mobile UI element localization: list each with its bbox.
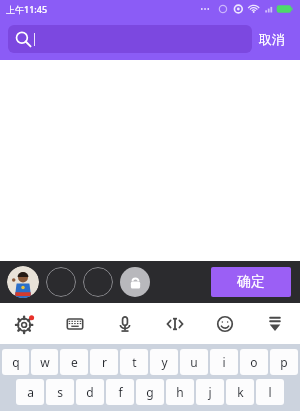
staticText: 取消 <box>259 31 285 47</box>
staticText: i <box>222 354 226 370</box>
button[interactable]: a <box>16 379 44 405</box>
staticText: o <box>250 354 258 370</box>
button[interactable]: o <box>240 349 268 375</box>
button[interactable]: Keyboard <box>50 303 100 344</box>
button[interactable]: s <box>46 379 74 405</box>
staticText: k <box>237 384 244 400</box>
staticText: g <box>146 384 154 400</box>
staticText: s <box>57 384 63 400</box>
button[interactable]: d <box>76 379 104 405</box>
button[interactable]: j <box>196 379 224 405</box>
staticText: a <box>27 384 34 400</box>
button[interactable]: Emoji <box>200 303 250 344</box>
button[interactable]: Locked <box>120 267 150 297</box>
button[interactable]: e <box>60 349 88 375</box>
button[interactable]: t <box>120 349 148 375</box>
staticText: 上午11:45 <box>6 3 48 15</box>
button[interactable]: i <box>210 349 238 375</box>
button[interactable]: y <box>150 349 178 375</box>
other: Search <box>14 30 32 48</box>
staticText: 确定 <box>237 273 265 291</box>
button[interactable]: q <box>2 349 29 375</box>
staticText: l <box>268 384 272 400</box>
button[interactable]: r <box>90 349 118 375</box>
button[interactable]: Empty slot <box>46 267 76 297</box>
button[interactable]: g <box>136 379 164 405</box>
button[interactable]: Hide keyboard <box>250 303 300 344</box>
button[interactable]: 取消 <box>252 27 292 51</box>
button[interactable]: Settings <box>0 303 50 344</box>
staticText: w <box>40 354 50 370</box>
staticText: u <box>190 354 198 370</box>
button[interactable]: f <box>106 379 134 405</box>
button[interactable]: Voice input <box>100 303 150 344</box>
staticText: j <box>208 384 212 400</box>
button[interactable]: Empty slot <box>83 267 113 297</box>
button[interactable]: h <box>166 379 194 405</box>
staticText: e <box>71 354 78 370</box>
button[interactable]: Search <box>8 25 252 53</box>
staticText: h <box>176 384 184 400</box>
staticText: r <box>102 354 107 370</box>
staticText: y <box>161 354 168 370</box>
button[interactable]: Avatar <box>7 266 39 298</box>
button[interactable]: k <box>226 379 254 405</box>
button[interactable]: 确定 <box>211 267 291 297</box>
button[interactable]: p <box>270 349 298 375</box>
button[interactable]: w <box>31 349 58 375</box>
staticText: f <box>118 384 123 400</box>
staticText: d <box>86 384 94 400</box>
staticText: t <box>132 354 137 370</box>
button[interactable]: l <box>256 379 284 405</box>
button[interactable]: Text tools <box>150 303 200 344</box>
button[interactable]: u <box>180 349 208 375</box>
staticText: q <box>12 354 20 370</box>
staticText: p <box>280 354 288 370</box>
